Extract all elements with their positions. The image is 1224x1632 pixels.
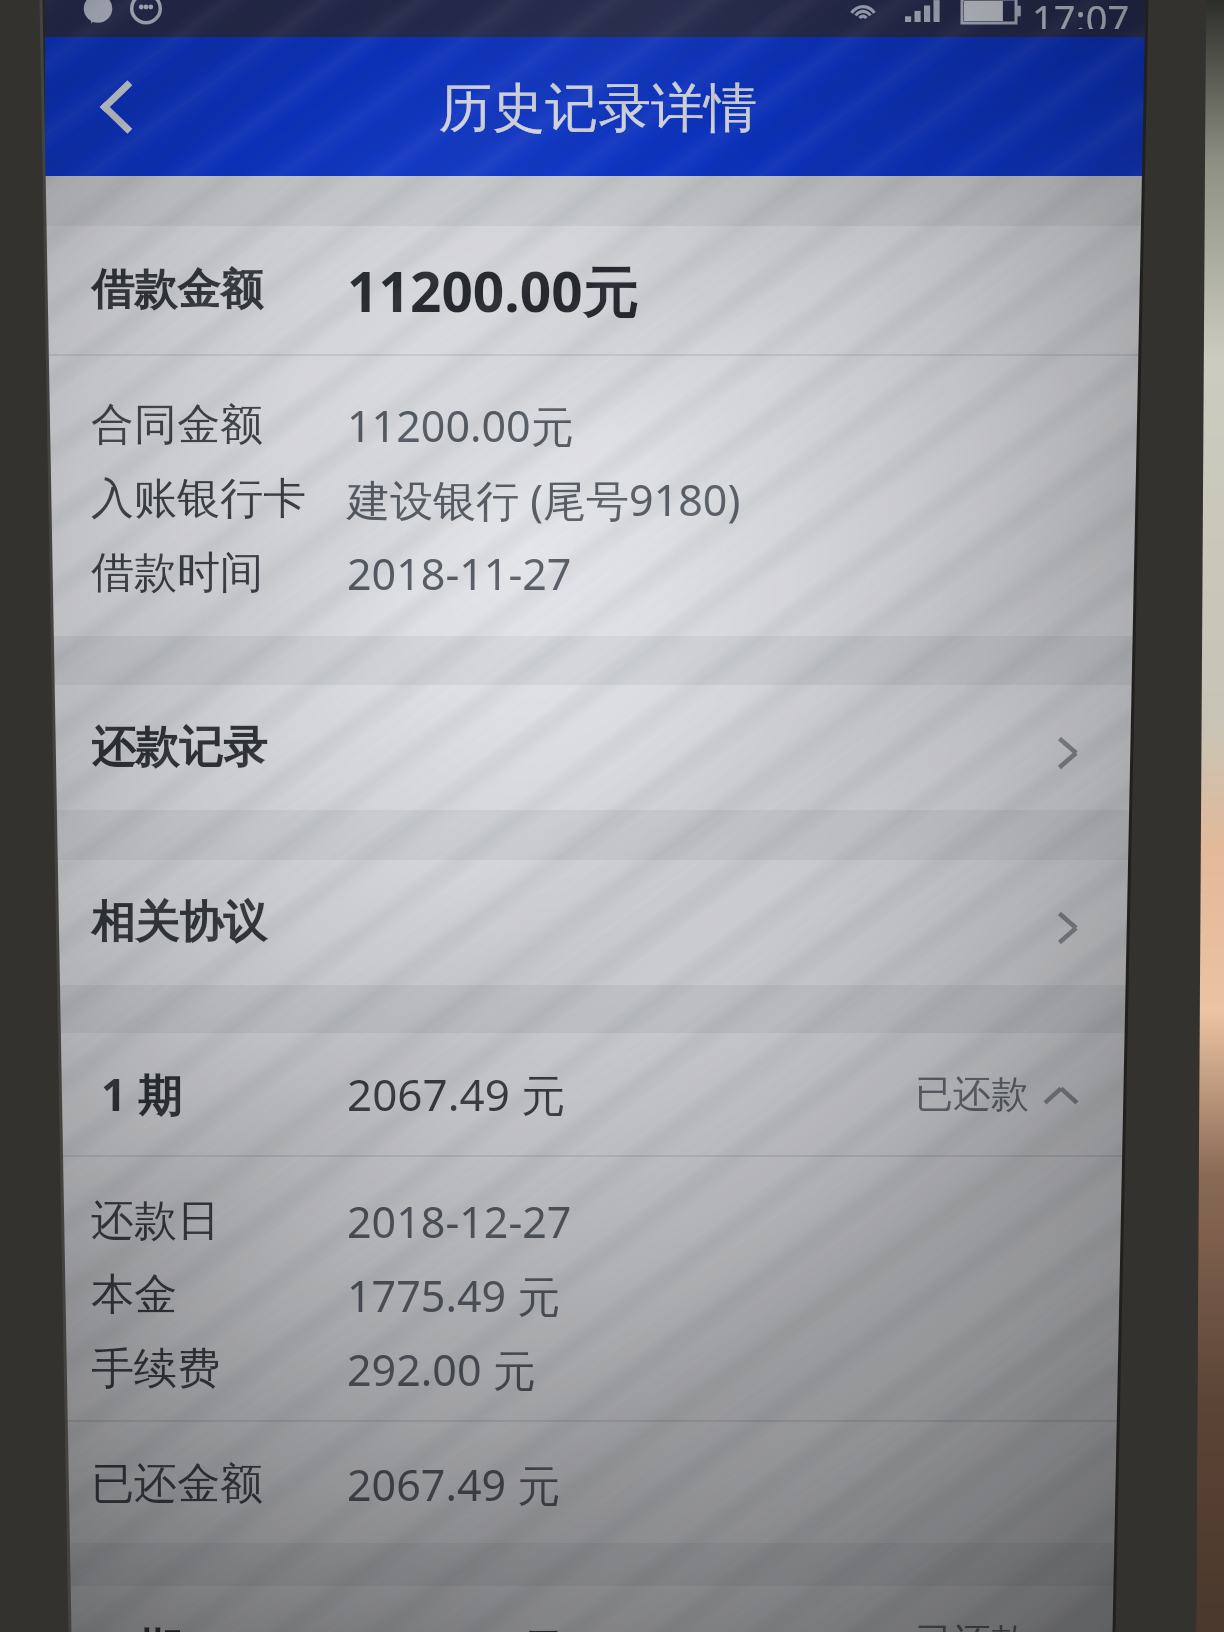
staticText: 历史记录详情 [439,75,757,142]
staticText: 已还款 [915,1070,1029,1118]
staticText: 建设银行 (尾号9180) [347,470,741,529]
button[interactable]: 相关协议 [45,860,1148,985]
staticText: 借款时间 [91,546,263,600]
staticText: 还款记录 [91,720,267,775]
staticText: 还款日 [91,1194,220,1248]
staticText: 11200.00元 [347,396,574,455]
staticText: 2067.49 元 [347,1618,566,1632]
staticText: 292.00 元 [347,1340,536,1399]
staticText: 1775.49 元 [347,1266,561,1325]
staticText: 1 期 [101,1064,182,1124]
staticText: 借款金额 [91,263,263,317]
staticText: 手续费 [91,1342,220,1396]
staticText: 本金 [91,1268,177,1322]
staticText: 相关协议 [91,895,267,950]
staticText: 入账银行卡 [91,472,306,526]
button[interactable]: 还款记录 [45,685,1148,810]
staticText: 已还金额 [91,1457,263,1511]
button[interactable]: 2 期 [91,1618,1081,1632]
staticText: 2018-12-27 [347,1192,572,1251]
staticText: 2 期 [101,1618,182,1632]
button[interactable]: 1 期 [91,1033,1081,1155]
staticText: 11200.00元 [347,253,638,328]
staticText: 2018-11-27 [347,544,572,603]
staticText: 2067.49 元 [347,1455,561,1514]
button[interactable]: Back [79,68,157,146]
staticText: 17:07 [1032,0,1130,29]
staticText: 合同金额 [91,398,263,452]
staticText: 2067.49 元 [347,1064,566,1124]
staticText: 已还款 [915,1618,1029,1632]
